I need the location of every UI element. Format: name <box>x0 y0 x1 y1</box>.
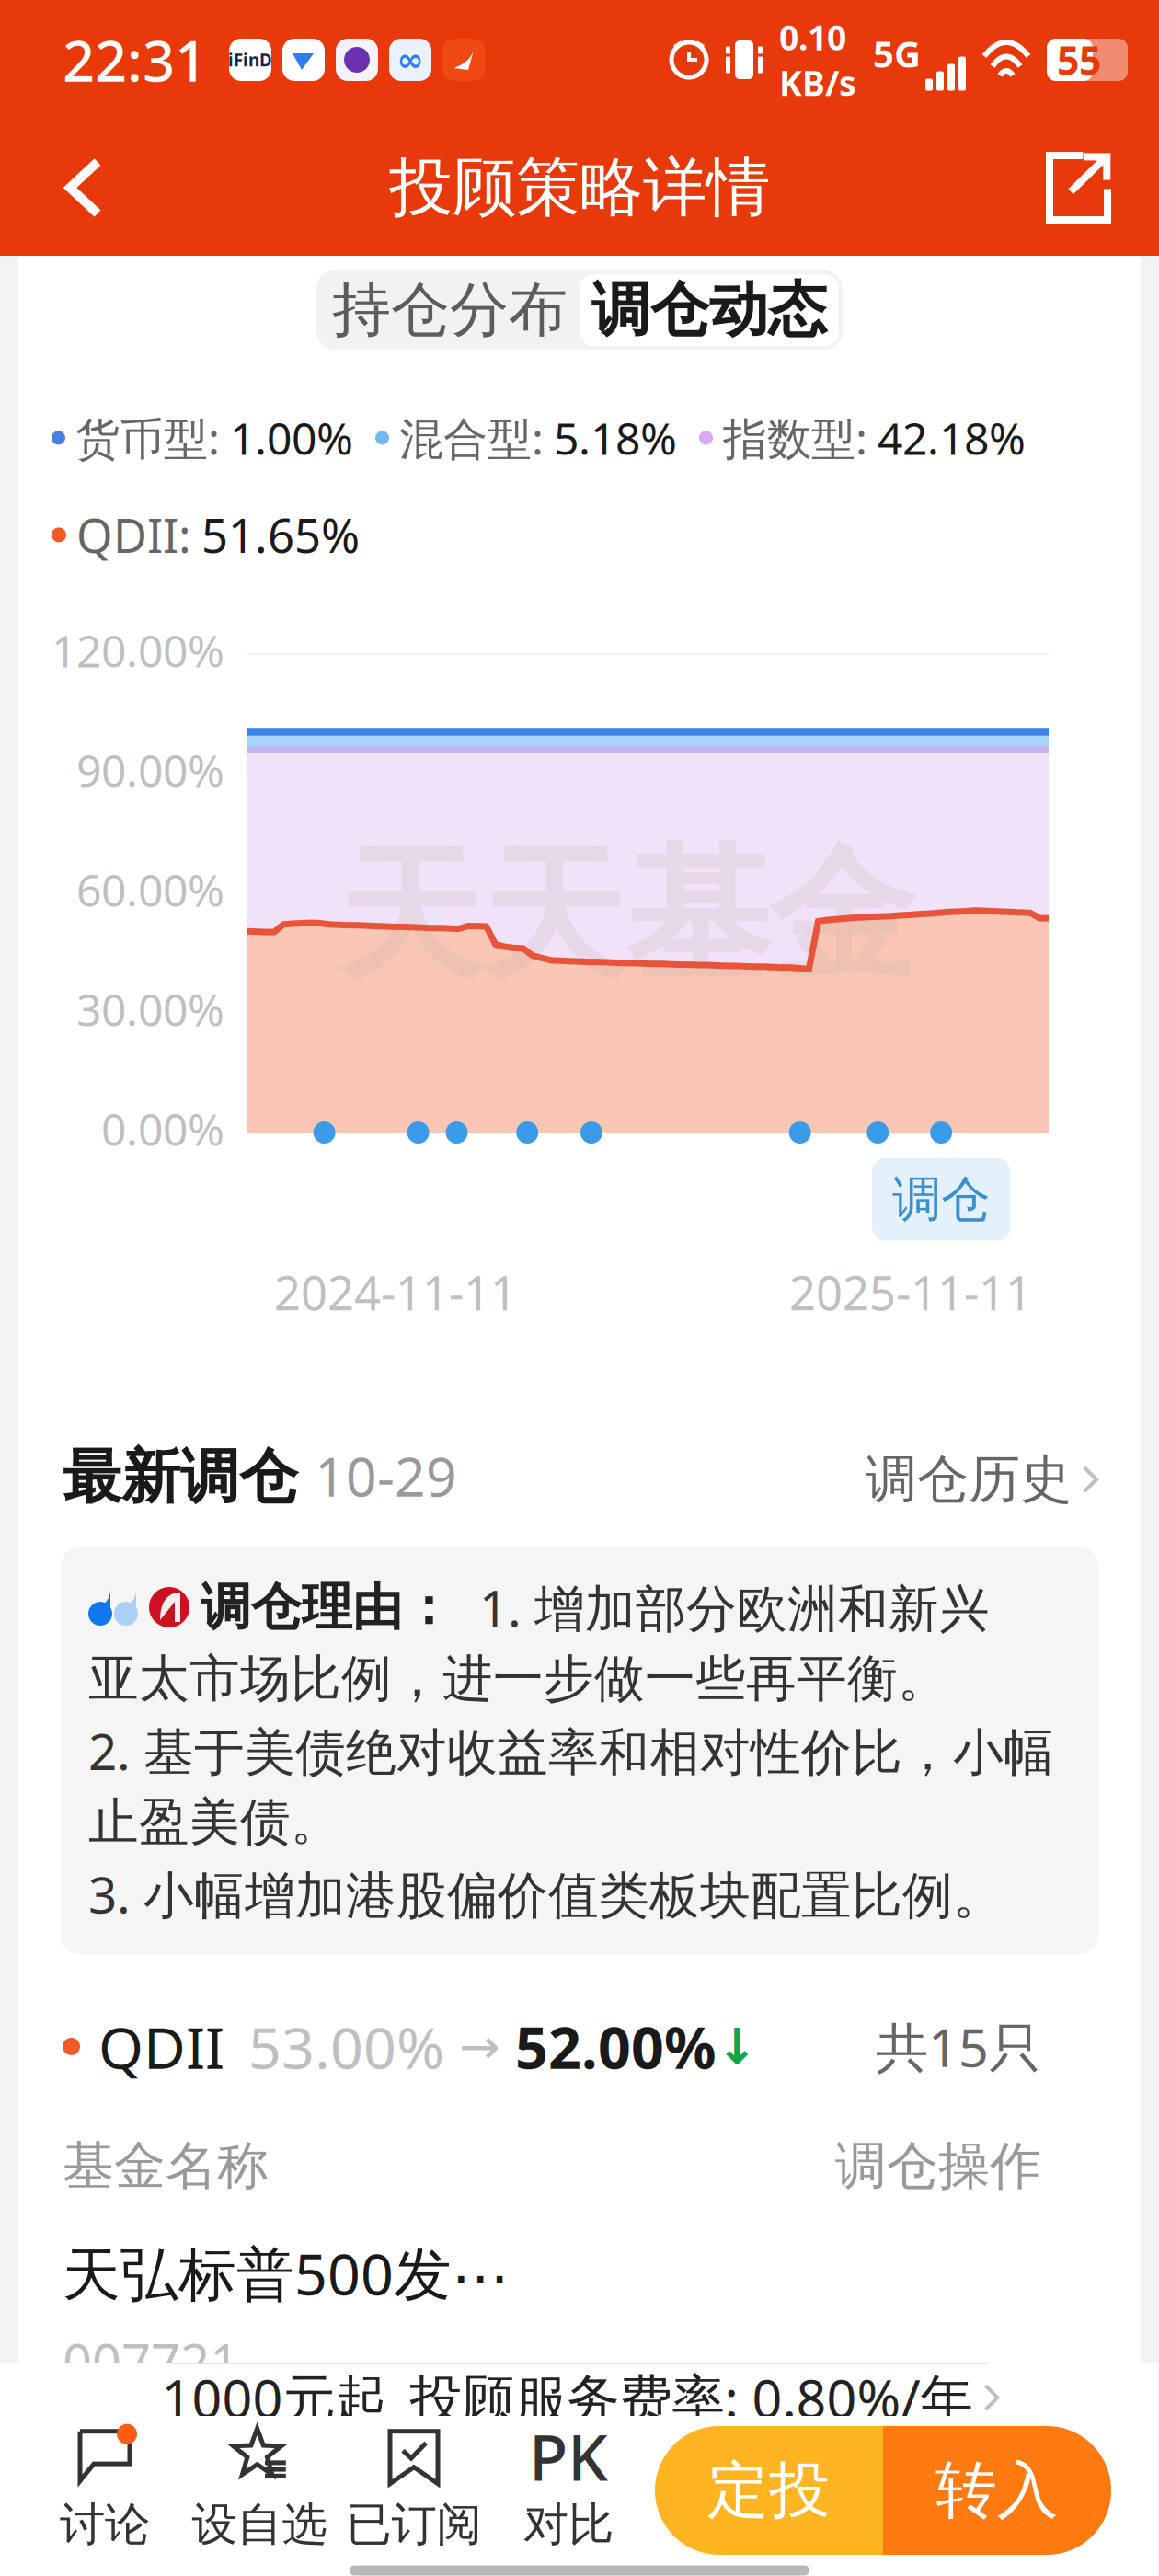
staticText: 讨论 <box>60 2497 150 2552</box>
staticText: 51.65% <box>201 504 360 566</box>
staticText: 调仓 <box>892 1169 990 1230</box>
staticText: 投顾服务费率: 0.80%/年 <box>410 2363 973 2433</box>
staticText: 22:31 <box>63 22 207 97</box>
staticText: 52.00% <box>515 2008 717 2085</box>
staticText: 调仓动态 <box>591 274 827 346</box>
button[interactable]: PK <box>491 2429 646 2552</box>
staticText: 投顾策略详情 <box>389 148 770 227</box>
staticText: 2. 基于美债绝对收益率和相对性价比，小幅 <box>88 1717 1054 1784</box>
staticText: QDII <box>98 2008 224 2085</box>
staticText: 调仓理由： <box>201 1576 453 1638</box>
staticText: KB/s <box>779 60 856 105</box>
staticText: → <box>459 2019 500 2074</box>
staticText: QDII: <box>76 504 191 566</box>
staticText: 30.00% <box>76 980 224 1038</box>
staticText: ↓ <box>717 2019 758 2074</box>
staticText: 5.18% <box>554 408 677 467</box>
staticText: 止盈美债。 <box>88 1791 341 1853</box>
button[interactable]: 调仓动态 <box>579 274 839 346</box>
button[interactable]: 调仓历史 <box>866 1448 1096 1511</box>
staticText: 5G <box>873 29 921 78</box>
button[interactable]: 持仓分布 <box>320 274 579 346</box>
staticText: 1000元起 <box>161 2363 388 2433</box>
staticText: 亚太市场比例，进一步做一些再平衡。 <box>88 1648 948 1710</box>
staticText: 持仓分布 <box>332 274 568 346</box>
staticText: 定投 <box>707 2453 831 2528</box>
staticText: 53.00% <box>248 2008 444 2085</box>
staticText: 55 <box>1057 34 1101 86</box>
staticText: 120.00% <box>52 621 224 680</box>
button[interactable]: 设自选 <box>182 2429 337 2552</box>
staticText: 3. 小幅增加港股偏价值类板块配置比例。 <box>88 1860 1004 1927</box>
staticText: iFinD <box>228 48 272 71</box>
staticText: 调仓操作 <box>835 2134 1041 2198</box>
staticText: PK <box>529 2414 608 2499</box>
button[interactable]: 1000元起 <box>0 2363 1159 2416</box>
button[interactable]: 已订阅 <box>337 2429 491 2552</box>
staticText: 对比 <box>523 2497 614 2552</box>
staticText: 60.00% <box>76 860 224 919</box>
staticText: 混合型: <box>399 408 544 467</box>
staticText: 调仓历史 <box>866 1448 1072 1511</box>
staticText: 天弘标普500发⋯ <box>63 2234 510 2311</box>
staticText: 已订阅 <box>346 2497 482 2552</box>
staticText: 基金名称 <box>63 2134 269 2198</box>
staticText: ∞ <box>397 42 424 78</box>
button[interactable]: Share <box>1025 137 1126 238</box>
staticText: 007721 <box>63 2328 239 2396</box>
staticText: 最新调仓 <box>63 1441 298 1513</box>
staticText: 2024-11-11 <box>274 1261 517 1323</box>
staticText: 0.00% <box>101 1099 224 1158</box>
staticText: 1. 增加部分欧洲和新兴 <box>479 1574 990 1641</box>
staticText: 42.18% <box>878 408 1026 467</box>
staticText: 1.00% <box>230 408 353 467</box>
staticText: 共15只 <box>876 2011 1041 2081</box>
button[interactable]: Back <box>33 137 134 238</box>
button[interactable]: 讨论 <box>28 2429 182 2552</box>
staticText: 天天基金 <box>337 827 914 1005</box>
staticText: 2025-11-11 <box>789 1261 1032 1323</box>
staticText: 转入 <box>935 2453 1059 2528</box>
button[interactable]: 定投 <box>655 2426 1111 2555</box>
staticText: 0.10 <box>779 14 846 60</box>
staticText: 90.00% <box>76 741 224 799</box>
staticText: 10-29 <box>315 1440 457 1511</box>
staticText: 设自选 <box>192 2497 327 2552</box>
staticText: 指数型: <box>723 408 867 467</box>
staticText: 货币型: <box>75 408 220 467</box>
